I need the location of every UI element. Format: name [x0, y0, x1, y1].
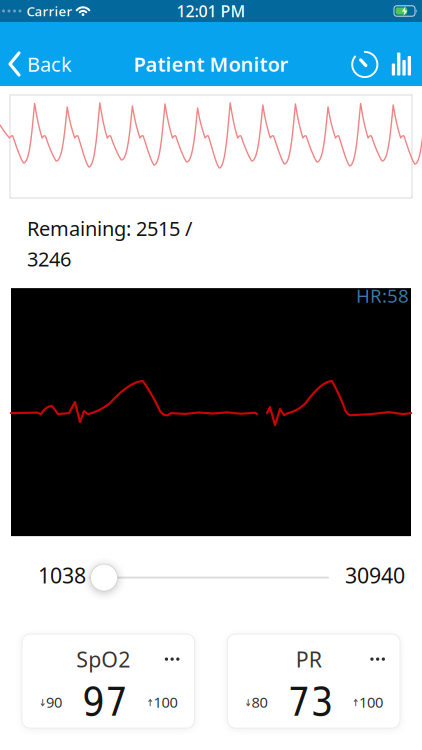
- button[interactable]: SpO2: [22, 633, 194, 729]
- button[interactable]: More options: [165, 657, 194, 661]
- staticText: SpO2: [76, 645, 130, 673]
- staticText: 90: [46, 692, 62, 712]
- button[interactable]: More options: [370, 657, 400, 661]
- staticText: PR: [296, 645, 322, 673]
- staticText: 100: [359, 692, 383, 712]
- staticText: Carrier: [26, 2, 72, 20]
- staticText: 97: [82, 679, 128, 725]
- staticText: Back: [27, 51, 72, 77]
- button[interactable]: Back: [0, 51, 72, 77]
- button[interactable]: Seek: [90, 564, 117, 591]
- button[interactable]: Timer: [351, 49, 379, 78]
- staticText: HR:58: [356, 283, 409, 308]
- staticText: Remaining: 2515 / 3246: [27, 215, 192, 272]
- staticText: 30940: [345, 561, 405, 589]
- staticText: 80: [251, 692, 267, 712]
- staticText: 12:01 PM: [176, 0, 245, 22]
- button[interactable]: PR: [227, 633, 400, 729]
- staticText: Patient Monitor: [133, 51, 288, 77]
- staticText: 100: [153, 692, 177, 712]
- staticText: 1038: [38, 561, 86, 589]
- staticText: 73: [288, 679, 334, 725]
- button[interactable]: Statistics: [379, 52, 422, 75]
